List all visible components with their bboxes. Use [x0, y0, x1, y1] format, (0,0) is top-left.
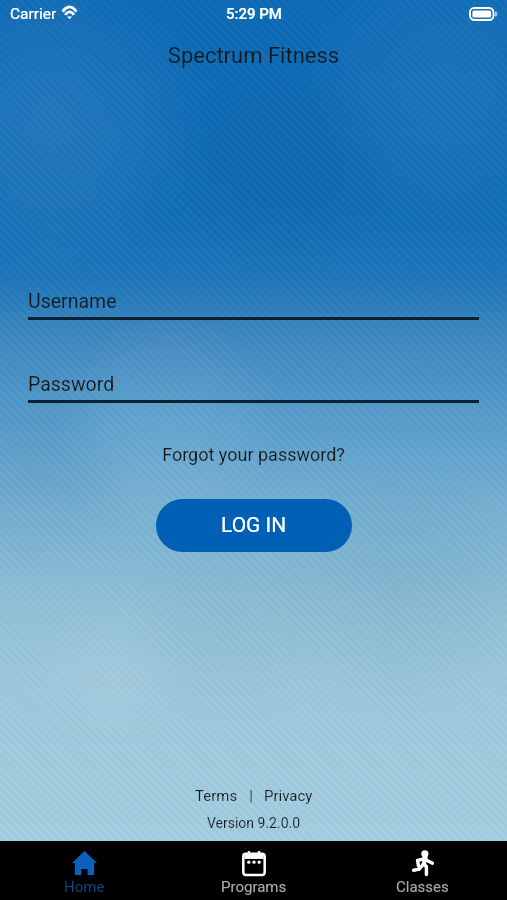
button[interactable]: Programs: [169, 841, 338, 900]
staticText: Version 9.2.0.0: [0, 815, 507, 831]
staticText: 5:29 PM: [226, 5, 282, 23]
button[interactable]: Username: [28, 290, 479, 320]
button[interactable]: LOG IN: [156, 499, 352, 552]
button[interactable]: Privacy: [264, 787, 313, 805]
staticText: |: [238, 787, 264, 805]
button[interactable]: Forgot your password?: [0, 444, 507, 465]
button[interactable]: Terms: [195, 787, 238, 805]
button[interactable]: Home: [0, 841, 169, 900]
staticText: Spectrum Fitness: [0, 43, 507, 69]
staticText: LOG IN: [221, 513, 287, 538]
button[interactable]: Classes: [338, 841, 507, 900]
staticText: Programs: [221, 878, 287, 896]
button[interactable]: Password: [28, 373, 479, 403]
staticText: Username: [28, 290, 117, 313]
staticText: Carrier: [10, 5, 57, 23]
staticText: Password: [28, 373, 115, 396]
staticText: Home: [64, 878, 105, 896]
staticText: Classes: [396, 878, 449, 896]
